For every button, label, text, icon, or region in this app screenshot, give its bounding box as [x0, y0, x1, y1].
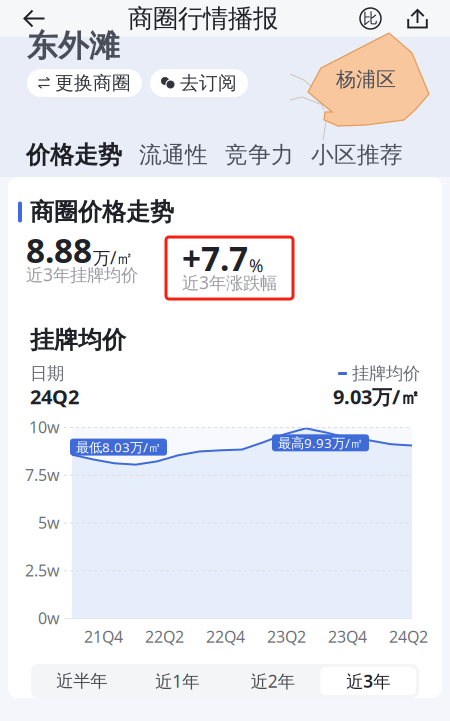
- staticText: 小区推荐: [311, 141, 403, 169]
- staticText: 商圈行情播报: [128, 3, 278, 34]
- staticText: 近1年: [155, 669, 199, 692]
- staticText: 商圈价格走势: [30, 197, 174, 227]
- staticText: 杨浦区: [336, 67, 396, 92]
- staticText: 23Q4: [328, 626, 367, 647]
- staticText: 10w: [29, 416, 60, 438]
- button[interactable]: 去订阅: [150, 69, 248, 97]
- staticText: 9.03万/㎡: [333, 383, 420, 410]
- button[interactable]: 近半年: [34, 667, 129, 695]
- button[interactable]: 小区推荐: [311, 141, 403, 169]
- staticText: 22Q4: [206, 626, 245, 647]
- button[interactable]: 近2年: [225, 667, 320, 695]
- staticText: 竞争力: [225, 141, 294, 169]
- staticText: 近3年挂牌均价: [26, 263, 138, 286]
- staticText: 2.5w: [25, 560, 60, 581]
- staticText: 挂牌均价: [30, 325, 126, 355]
- staticText: 24Q2: [389, 626, 428, 647]
- staticText: 0w: [38, 607, 60, 629]
- staticText: 7.5w: [25, 464, 60, 485]
- staticText: 21Q4: [84, 626, 123, 647]
- staticText: 去订阅: [180, 71, 237, 94]
- button[interactable]: 近1年: [129, 667, 225, 695]
- staticText: 最低8.03万/㎡: [76, 438, 161, 456]
- staticText: 东外滩: [27, 27, 120, 65]
- staticText: 万/㎡: [93, 246, 133, 269]
- button[interactable]: 对比: [352, 0, 389, 37]
- button[interactable]: 更换商圈: [27, 69, 142, 97]
- button[interactable]: 流通性: [139, 141, 208, 169]
- staticText: 近3年: [346, 669, 390, 692]
- staticText: 24Q2: [30, 383, 79, 410]
- staticText: 23Q2: [267, 626, 306, 647]
- staticText: %: [249, 254, 263, 277]
- staticText: 更换商圈: [55, 71, 131, 94]
- button[interactable]: 分享: [389, 0, 450, 37]
- button[interactable]: 返回: [0, 0, 54, 37]
- staticText: 近3年涨跌幅: [182, 271, 277, 294]
- staticText: 近半年: [56, 670, 107, 692]
- staticText: 日期: [30, 363, 64, 384]
- staticText: 挂牌均价: [352, 363, 420, 384]
- staticText: 22Q2: [145, 626, 184, 647]
- button[interactable]: 价格走势: [26, 140, 122, 170]
- staticText: 比: [363, 9, 378, 27]
- staticText: 流通性: [139, 141, 208, 169]
- staticText: 近2年: [251, 669, 295, 692]
- staticText: 最高9.93万/㎡: [278, 434, 363, 452]
- staticText: +7.7: [182, 236, 248, 280]
- button[interactable]: 近3年: [320, 667, 416, 695]
- staticText: 8.88: [26, 228, 92, 272]
- staticText: 价格走势: [26, 140, 122, 170]
- staticText: 5w: [38, 512, 60, 533]
- button[interactable]: 竞争力: [225, 141, 294, 169]
